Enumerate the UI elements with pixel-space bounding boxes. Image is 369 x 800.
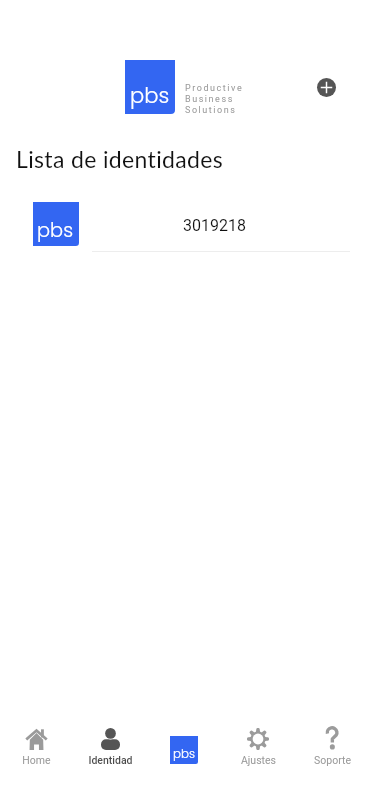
- staticText: Productive: [185, 83, 244, 94]
- staticText: Business: [185, 94, 234, 105]
- staticText: pbs: [173, 746, 195, 763]
- staticText: Home: [22, 754, 51, 766]
- staticText: pbs: [130, 81, 170, 111]
- staticText: Identidad: [88, 754, 133, 766]
- button[interactable]: Identidad: [73, 718, 147, 774]
- button[interactable]: Agregar identidad: [313, 74, 340, 101]
- button[interactable]: pbs: [0, 198, 369, 252]
- button[interactable]: Ajustes: [221, 718, 295, 774]
- button[interactable]: PBS: [147, 718, 221, 774]
- staticText: Lista de identidades: [16, 145, 224, 173]
- staticText: Ajustes: [241, 754, 276, 766]
- button[interactable]: Home: [0, 718, 73, 774]
- staticText: Solutions: [185, 105, 237, 116]
- staticText: pbs: [37, 217, 74, 244]
- button[interactable]: Soporte: [295, 718, 369, 774]
- staticText: Soporte: [314, 754, 351, 766]
- staticText: 3019218: [183, 216, 246, 235]
